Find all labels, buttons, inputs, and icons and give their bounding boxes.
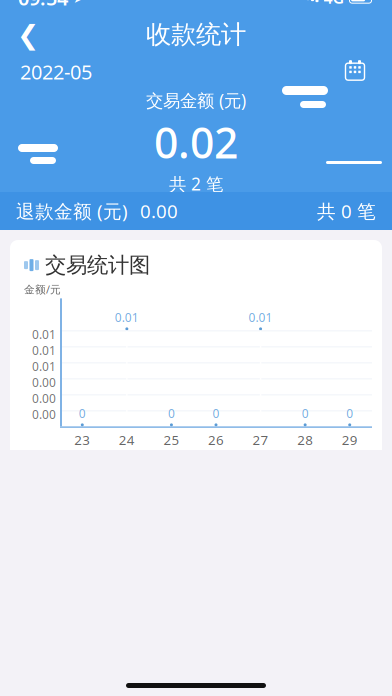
staticText: 0.00 — [32, 374, 56, 390]
staticText: 0 — [79, 405, 86, 421]
staticText: 0.01 — [32, 342, 56, 358]
staticText: 0 — [212, 405, 219, 421]
staticText: 共 0 笔 — [317, 199, 376, 223]
staticText: 0 — [302, 405, 309, 421]
staticText: 0 — [346, 405, 353, 421]
staticText: 27 — [253, 431, 269, 449]
staticText: 0 — [168, 405, 175, 421]
staticText: 0.00 — [140, 199, 178, 223]
staticText: 23 — [74, 431, 90, 449]
staticText: 25 — [163, 431, 179, 449]
staticText: 0.00 — [32, 390, 56, 406]
staticText: 2022-05 — [20, 58, 92, 85]
staticText: 24 — [119, 431, 135, 449]
staticText: 28 — [297, 431, 313, 449]
staticText: 09:54 — [18, 0, 68, 11]
staticText: 金额/元 — [24, 282, 61, 296]
staticText: 收款统计 — [146, 19, 246, 50]
staticText: 交易金额 (元) — [146, 89, 246, 112]
staticText: 4G — [323, 0, 344, 8]
staticText: 0.02 — [154, 114, 238, 170]
staticText: 0.01 — [32, 326, 56, 342]
staticText: 退款金额 (元) — [16, 199, 128, 223]
button[interactable]: 2022-05 — [20, 52, 92, 91]
button[interactable]: Back — [6, 15, 50, 55]
staticText: 共 2 笔 — [169, 172, 223, 195]
staticText: 0.00 — [32, 406, 56, 422]
staticText: 26 — [208, 431, 224, 449]
staticText: 0.01 — [249, 309, 273, 325]
staticText: 0.01 — [115, 309, 139, 325]
staticText: ❮ — [17, 19, 39, 50]
button[interactable]: Pick date — [338, 57, 372, 87]
staticText: 交易统计图 — [45, 252, 150, 278]
staticText: 0.01 — [32, 358, 56, 374]
staticText: 29 — [342, 431, 358, 449]
staticText: ➤ — [73, 0, 85, 6]
